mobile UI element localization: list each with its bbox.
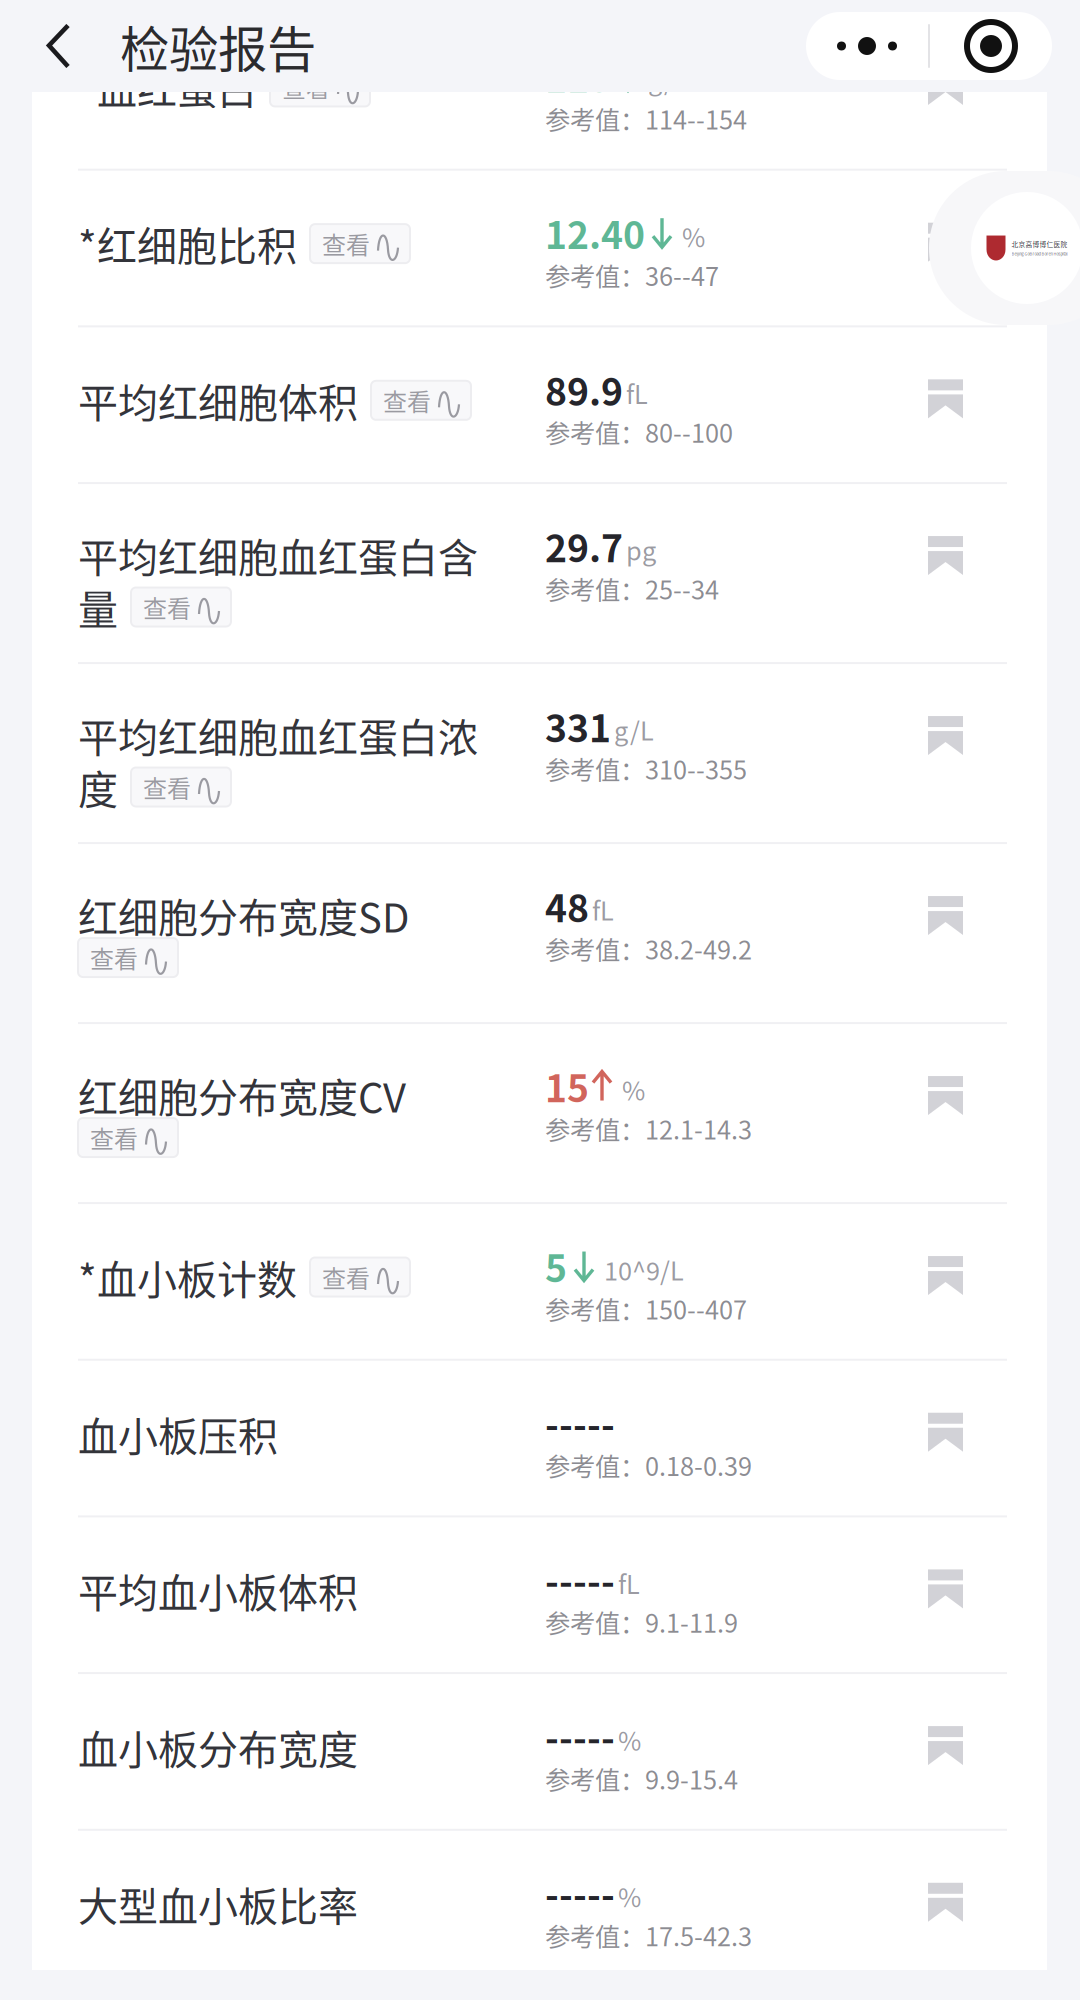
staticText: *血红蛋白 [78,58,257,116]
staticText: 331 [545,699,611,753]
staticText: 参考值：310--355 [545,750,747,787]
button[interactable]: 关闭 [930,12,1052,80]
staticText: 平均红细胞体积 [78,371,358,429]
staticText: 29.7 [545,519,623,573]
staticText: fL [626,374,648,411]
staticText: 查看 [90,940,138,975]
staticText: 查看 [383,383,431,418]
staticText: *血小板计数 [78,1248,297,1306]
staticText: *红细胞比积 [78,215,297,273]
staticText: pg [626,531,656,568]
staticText: fL [592,891,614,928]
button[interactable]: 查看 [78,1118,178,1157]
button[interactable]: 更多 [806,12,928,80]
staticText: 查看 [322,1260,370,1294]
staticText: 参考值：0.18-0.39 [545,1447,752,1483]
button[interactable]: 返回 [0,23,120,68]
staticText: 48 [545,879,589,933]
staticText: 5 [545,1239,567,1293]
button[interactable]: 查看 [131,587,231,626]
staticText: 大型血小板比率 [78,1875,358,1933]
staticText: 参考值：80--100 [545,413,733,450]
staticText: ----- [545,1709,615,1763]
staticText: 参考值：9.1-11.9 [545,1603,738,1640]
staticText: 89.9 [545,362,623,416]
staticText: 红细胞分布宽度SD [78,886,410,944]
staticText: 血小板分布宽度 [78,1718,358,1776]
button[interactable]: 查看 [310,224,410,263]
staticText: 参考值：150--407 [545,1290,747,1327]
staticText: 参考值：17.5-42.3 [545,1917,752,1953]
staticText: 参考值：114--154 [545,100,747,137]
staticText: ----- [545,1866,615,1920]
staticText: fL [618,1565,640,1601]
staticText: 查看 [282,70,330,104]
button[interactable]: 查看 [131,767,231,806]
button[interactable]: 查看 [270,67,370,106]
staticText: % [682,218,705,254]
staticText: 北京高博博仁医院 [1011,239,1067,249]
staticText: 平均血小板体积 [78,1561,358,1619]
staticText: Beijing GoBroad Boren Hospital [1011,251,1067,257]
staticText: g/L [648,61,688,98]
button[interactable]: 查看 [78,938,178,977]
staticText: % [622,1071,645,1108]
button[interactable]: 查看 [310,1257,410,1296]
staticText: % [618,1721,641,1758]
staticText: 参考值：25--34 [545,570,719,607]
button[interactable]: 查看 [371,381,471,420]
staticText: ----- [545,1396,615,1450]
staticText: 参考值：38.2-49.2 [545,930,752,967]
staticText: % [618,1878,641,1915]
staticText: 查看 [143,770,191,804]
staticText: 查看 [143,590,191,624]
staticText: 12.40 [545,206,645,260]
staticText: 10^9/L [604,1251,684,1288]
staticText: g/L [614,711,654,748]
staticText: 查看 [322,226,370,261]
staticText: 红细胞分布宽度CV [78,1066,406,1124]
staticText: 参考值：36--47 [545,257,719,293]
staticText: 参考值：12.1-14.3 [545,1110,752,1147]
staticText: 量 [78,578,118,636]
staticText: 平均红细胞血红蛋白浓 [78,706,478,764]
staticText: 115 [545,49,611,103]
staticText: 血小板压积 [78,1405,278,1463]
staticText: 平均红细胞血红蛋白含 [78,526,478,584]
staticText: 查看 [90,1120,138,1155]
staticText: ----- [545,1552,615,1606]
staticText: 参考值：9.9-15.4 [545,1760,738,1797]
staticText: 检验报告 [120,10,316,82]
staticText: 度 [78,758,118,816]
staticText: 15 [545,1059,589,1113]
